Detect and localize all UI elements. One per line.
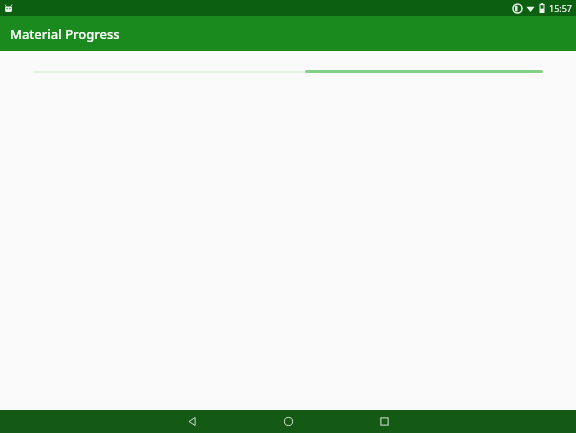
button[interactable]: Back <box>144 410 240 433</box>
staticText: 15:57 <box>549 2 573 14</box>
button[interactable]: Recents <box>336 410 432 433</box>
staticText: Material Progress <box>10 25 120 43</box>
button[interactable]: Loading progress <box>0 60 576 82</box>
button[interactable]: Home <box>240 410 336 433</box>
